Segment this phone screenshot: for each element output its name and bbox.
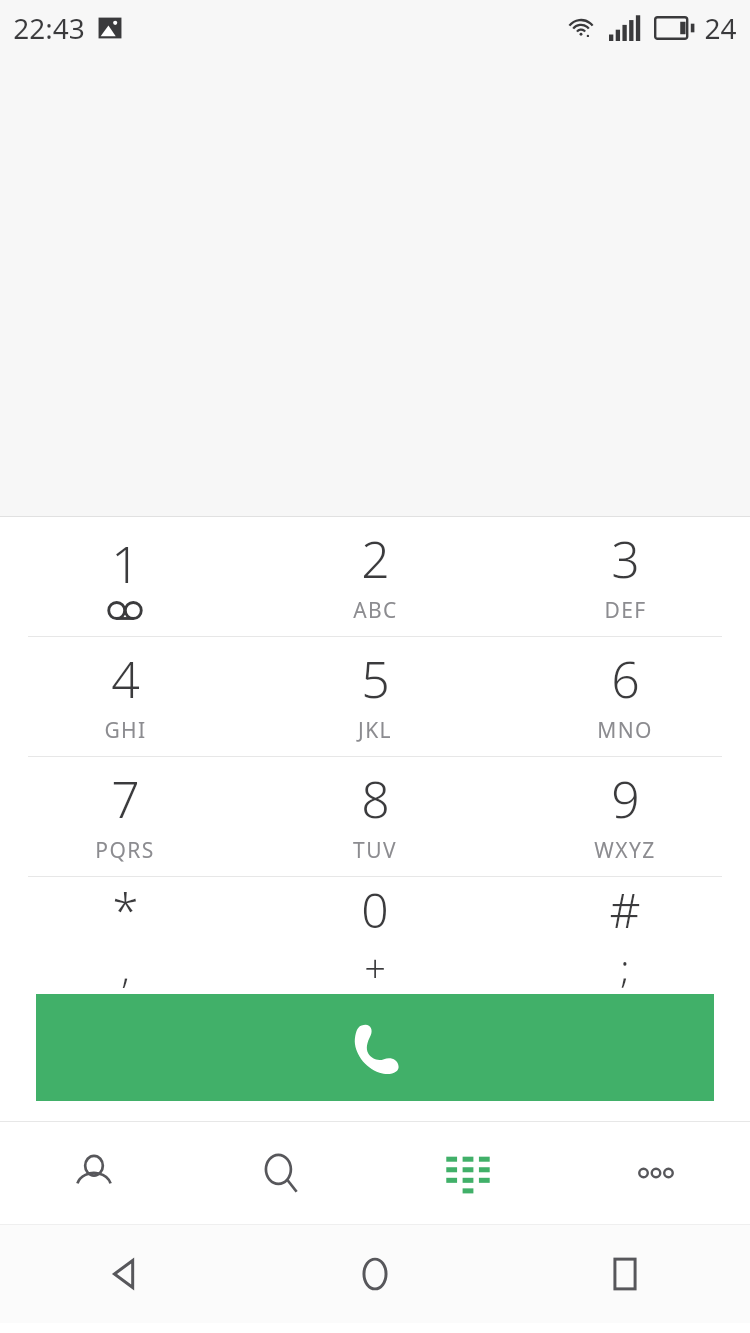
staticText: # <box>609 877 641 942</box>
staticText: 24 <box>704 9 737 47</box>
button[interactable]: 5 <box>250 637 500 756</box>
button[interactable]: 1 <box>0 517 250 636</box>
staticText: 8 <box>361 765 390 833</box>
staticText: * <box>112 877 139 942</box>
staticText: 2 <box>361 525 390 593</box>
button[interactable]: Contacts <box>0 1122 187 1224</box>
staticText: , <box>121 942 130 994</box>
staticText: 1 <box>111 530 140 598</box>
button[interactable]: More options <box>562 1122 750 1224</box>
button[interactable]: 3 <box>500 517 750 636</box>
button[interactable]: Search <box>187 1122 374 1224</box>
staticText: WXYZ <box>594 836 656 865</box>
staticText: 6 <box>611 645 640 713</box>
staticText: 22:43 <box>13 9 85 47</box>
button[interactable]: 6 <box>500 637 750 756</box>
staticText: 9 <box>611 765 640 833</box>
staticText: + <box>364 942 386 994</box>
staticText: 0 <box>361 877 389 942</box>
button[interactable]: Back <box>0 1225 250 1323</box>
staticText: 5 <box>361 645 390 713</box>
staticText: 7 <box>111 765 140 833</box>
button[interactable]: 4 <box>0 637 250 756</box>
button[interactable]: Home <box>250 1225 500 1323</box>
staticText: JKL <box>358 716 392 745</box>
button[interactable]: * <box>0 877 250 994</box>
button[interactable]: 0 <box>250 877 500 994</box>
button[interactable]: Call <box>36 994 714 1101</box>
button[interactable]: 7 <box>0 757 250 876</box>
button[interactable]: Dialpad <box>374 1122 562 1224</box>
staticText: ABC <box>353 596 398 625</box>
button[interactable]: 9 <box>500 757 750 876</box>
button[interactable]: Recent apps <box>500 1225 750 1323</box>
button[interactable]: 2 <box>250 517 500 636</box>
button[interactable]: # <box>500 877 750 994</box>
staticText: MNO <box>597 716 653 745</box>
staticText: 4 <box>111 645 140 713</box>
staticText: ; <box>620 942 630 994</box>
staticText: GHI <box>104 716 147 745</box>
button[interactable]: 8 <box>250 757 500 876</box>
staticText: TUV <box>353 836 397 865</box>
staticText: 3 <box>611 525 640 593</box>
staticText: DEF <box>604 596 647 625</box>
staticText: PQRS <box>95 836 155 865</box>
